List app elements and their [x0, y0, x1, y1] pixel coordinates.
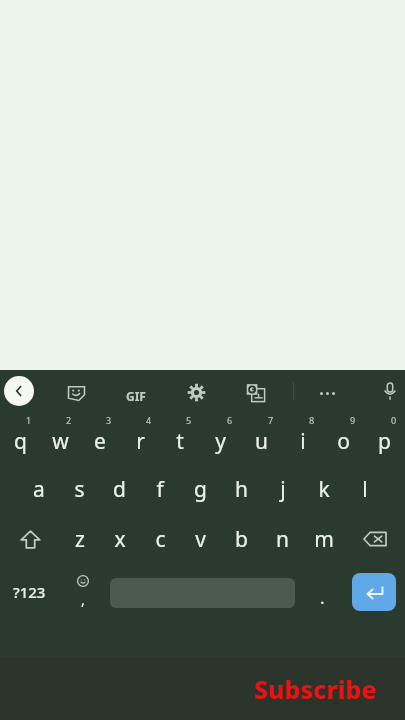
button[interactable]: .	[300, 564, 344, 620]
staticText: b	[235, 525, 248, 554]
staticText: n	[276, 525, 289, 554]
staticText: y	[215, 427, 226, 456]
staticText: m	[314, 525, 334, 554]
button[interactable]: 1	[0, 412, 40, 464]
button[interactable]: GIF	[118, 378, 154, 414]
staticText: o	[337, 427, 350, 456]
staticText: 0	[391, 414, 397, 426]
staticText: 2	[66, 414, 72, 426]
button[interactable]: More options	[312, 378, 342, 408]
staticText: GIF	[126, 388, 146, 404]
button[interactable]: k	[303, 464, 344, 514]
staticText: f	[156, 475, 164, 504]
button[interactable]: 5	[160, 412, 200, 464]
staticText: l	[362, 475, 368, 504]
button[interactable]: m	[303, 514, 344, 564]
button[interactable]: 0	[364, 412, 405, 464]
button[interactable]: 4	[120, 412, 160, 464]
staticText: x	[114, 525, 126, 554]
button[interactable]: h	[221, 464, 262, 514]
button[interactable]: Voice input	[377, 378, 403, 404]
button[interactable]: 7	[241, 412, 282, 464]
button[interactable]: a	[19, 464, 59, 514]
staticText: t	[176, 427, 184, 456]
staticText: 3	[106, 414, 112, 426]
button[interactable]: f	[139, 464, 180, 514]
staticText: 4	[146, 414, 152, 426]
staticText: s	[74, 475, 85, 504]
button[interactable]: b	[221, 514, 262, 564]
button[interactable]: 6	[200, 412, 241, 464]
button[interactable]: s	[59, 464, 99, 514]
button[interactable]: ?123	[0, 564, 58, 620]
button[interactable]: v	[180, 514, 221, 564]
button[interactable]: c	[140, 514, 180, 564]
staticText: 9	[350, 414, 356, 426]
button[interactable]: 2	[40, 412, 80, 464]
staticText: z	[75, 525, 85, 554]
staticText: w	[52, 427, 69, 456]
button[interactable]: l	[344, 464, 385, 514]
button[interactable]: Settings	[182, 378, 210, 406]
staticText: j	[280, 475, 286, 504]
staticText: c	[155, 525, 166, 554]
button[interactable]: Translate	[241, 378, 269, 406]
button[interactable]: 8	[282, 412, 323, 464]
staticText: g	[194, 475, 207, 504]
staticText: u	[255, 427, 268, 456]
staticText: 5	[186, 414, 192, 426]
staticText: k	[318, 475, 330, 504]
staticText: q	[14, 427, 27, 456]
staticText: ,	[81, 590, 85, 609]
button[interactable]: g	[180, 464, 221, 514]
staticText: 7	[268, 414, 274, 426]
button[interactable]: Back	[4, 376, 34, 406]
staticText: r	[136, 427, 145, 456]
staticText: p	[378, 427, 391, 456]
staticText: 1	[26, 414, 32, 426]
staticText: i	[300, 427, 306, 456]
staticText: h	[235, 475, 248, 504]
button[interactable]: 9	[323, 412, 364, 464]
staticText: Subscribe	[254, 672, 377, 706]
button[interactable]: x	[100, 514, 140, 564]
button[interactable]: Shift	[0, 514, 60, 564]
button[interactable]: j	[262, 464, 303, 514]
staticText: 6	[227, 414, 233, 426]
button[interactable]: 3	[80, 412, 120, 464]
staticText: a	[33, 475, 45, 504]
button[interactable]: n	[262, 514, 303, 564]
staticText: v	[195, 525, 206, 554]
button[interactable]: Enter	[352, 573, 396, 611]
button[interactable]: d	[99, 464, 139, 514]
button[interactable]: Backspace	[344, 514, 405, 564]
staticText: .	[320, 586, 325, 609]
button[interactable]: z	[60, 514, 100, 564]
button[interactable]: Emoji	[58, 564, 108, 620]
staticText: d	[113, 475, 126, 504]
button[interactable]: Stickers	[62, 378, 90, 406]
staticText: ?123	[13, 582, 46, 602]
staticText: 8	[309, 414, 315, 426]
staticText: e	[94, 427, 106, 456]
